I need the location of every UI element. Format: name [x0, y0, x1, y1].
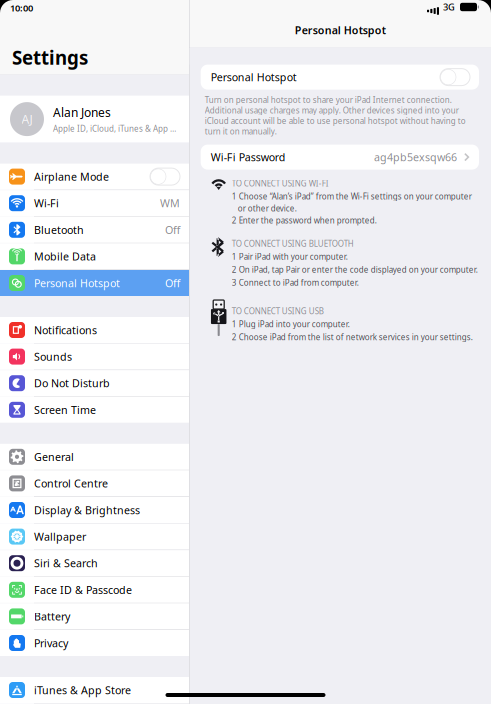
button[interactable]: General [0, 444, 189, 470]
button[interactable]: Airplane Mode [0, 164, 189, 190]
staticText: Do Not Disturb [34, 376, 110, 390]
staticText: TO CONNECT USING BLUETOOTH [232, 238, 354, 249]
button[interactable]: Wi-Fi [0, 190, 189, 216]
button[interactable]: iTunes & App Store [0, 677, 189, 703]
button[interactable]: Battery [0, 603, 189, 629]
staticText: Control Centre [34, 476, 108, 490]
staticText: Display & Brightness [34, 503, 140, 517]
button[interactable]: Wallpaper [0, 524, 189, 550]
staticText: TO CONNECT USING USB [232, 306, 324, 317]
staticText: 2 Choose iPad from the list of network s… [232, 332, 473, 343]
staticText: Personal Hotspot [34, 276, 120, 290]
staticText: Apple ID, iCloud, iTunes & App St… [53, 123, 178, 134]
button[interactable]: Privacy [0, 630, 189, 656]
button[interactable]: Bluetooth [0, 217, 189, 243]
staticText: Alan Jones [53, 104, 111, 120]
staticText: Settings [12, 45, 88, 70]
staticText: Privacy [34, 636, 68, 650]
staticText: General [34, 450, 74, 464]
staticText: Off [165, 223, 180, 237]
button[interactable]: Notifications [0, 317, 189, 343]
staticText: 2 On iPad, tap Pair or enter the code di… [232, 264, 478, 275]
staticText: 3G [443, 1, 455, 13]
staticText: or other device. [232, 203, 297, 214]
staticText: Battery [34, 609, 70, 623]
staticText: AJ [21, 111, 32, 127]
staticText: 1 Choose “Alan’s iPad” from the Wi-Fi se… [232, 191, 472, 202]
staticText: Turn on personal hotspot to share your i… [205, 94, 452, 105]
button[interactable]: Screen Time [0, 397, 189, 423]
staticText: Wi-Fi [34, 196, 59, 210]
staticText: TO CONNECT USING WI-FI [232, 178, 329, 189]
staticText: 2 Enter the password when prompted. [232, 215, 377, 226]
staticText: Airplane Mode [34, 169, 109, 184]
button[interactable]: AJ [0, 96, 189, 143]
staticText: ag4pb5exsqw66 [374, 150, 457, 164]
button[interactable]: Face ID & Passcode [0, 577, 189, 603]
button[interactable]: Siri & Search [0, 550, 189, 576]
staticText: Bluetooth [34, 223, 84, 237]
button[interactable]: Control Centre [0, 470, 189, 496]
staticText: WM [160, 196, 180, 210]
button[interactable]: Mobile Data [0, 243, 189, 269]
button[interactable]: Sounds [0, 344, 189, 370]
staticText: 1 Pair iPad with your computer. [232, 251, 348, 262]
staticText: Face ID & Passcode [34, 583, 132, 597]
staticText: Screen Time [34, 403, 96, 417]
button[interactable]: Display & Brightness [0, 497, 189, 523]
staticText: turn it on manually. [205, 126, 277, 137]
staticText: Additional usage charges may apply. Othe… [205, 105, 459, 116]
button[interactable]: Personal Hotspot [0, 270, 189, 296]
staticText: Siri & Search [34, 556, 98, 570]
staticText: Personal Hotspot [211, 70, 297, 84]
staticText: Off [165, 276, 180, 290]
staticText: 10:00 [10, 2, 33, 14]
staticText: Sounds [34, 349, 72, 364]
staticText: 3 Connect to iPad from computer. [232, 277, 359, 288]
staticText: 1 Plug iPad into your computer. [232, 319, 350, 330]
staticText: Personal Hotspot [295, 23, 386, 37]
staticText: Mobile Data [34, 249, 96, 263]
staticText: iCloud account will be able to use perso… [205, 115, 466, 126]
staticText: Wi-Fi Password [211, 150, 286, 164]
staticText: iTunes & App Store [34, 683, 131, 697]
button[interactable]: Do Not Disturb [0, 370, 189, 396]
staticText: Wallpaper [34, 529, 86, 544]
staticText: Notifications [34, 323, 97, 337]
